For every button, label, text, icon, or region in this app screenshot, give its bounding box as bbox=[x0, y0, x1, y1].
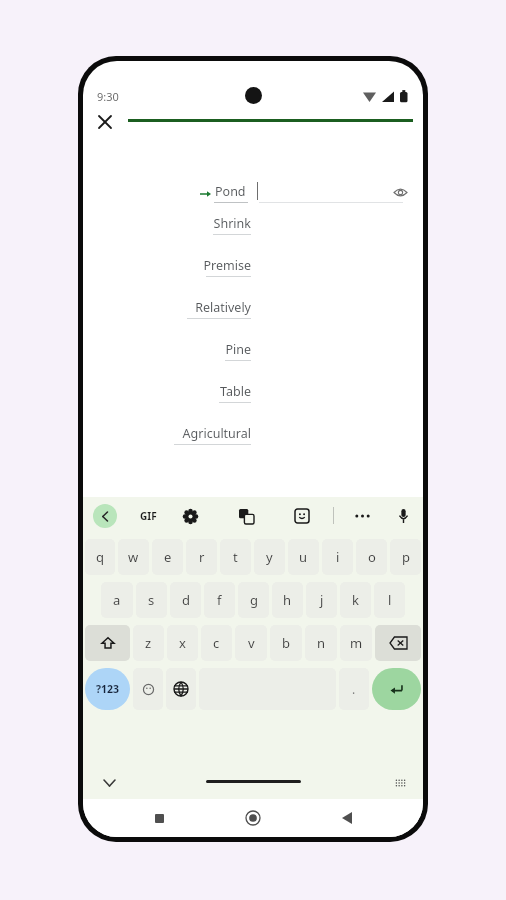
button[interactable]: w bbox=[118, 539, 149, 575]
staticText: . bbox=[352, 681, 356, 697]
button[interactable]: q bbox=[85, 539, 115, 575]
staticText: a bbox=[113, 591, 121, 609]
staticText: Relatively bbox=[123, 299, 251, 316]
staticText: h bbox=[283, 591, 292, 609]
button[interactable]: o bbox=[356, 539, 387, 575]
button[interactable]: Home bbox=[235, 800, 271, 836]
staticText: l bbox=[388, 591, 392, 609]
button[interactable]: Translate bbox=[231, 503, 261, 529]
staticText: n bbox=[317, 634, 326, 652]
button[interactable]: d bbox=[170, 582, 201, 618]
button[interactable]: a bbox=[101, 582, 133, 618]
button[interactable]: s bbox=[136, 582, 167, 618]
button[interactable]: Back bbox=[93, 504, 117, 528]
button[interactable]: l bbox=[374, 582, 405, 618]
button[interactable]: Show password bbox=[389, 181, 411, 203]
staticText: GIF bbox=[140, 509, 157, 523]
staticText: m bbox=[350, 634, 363, 652]
staticText: g bbox=[250, 591, 258, 609]
staticText: i bbox=[336, 548, 340, 566]
button[interactable]: Voice input bbox=[389, 503, 417, 529]
button[interactable]: Stickers bbox=[287, 503, 317, 529]
button[interactable]: n bbox=[305, 625, 337, 661]
button[interactable]: c bbox=[201, 625, 232, 661]
button[interactable]: Switch keyboard bbox=[389, 772, 411, 794]
staticText: s bbox=[148, 591, 155, 609]
button[interactable]: Agricultural bbox=[83, 417, 423, 459]
button[interactable]: k bbox=[340, 582, 371, 618]
staticText: ?123 bbox=[96, 682, 120, 696]
staticText: q bbox=[96, 548, 104, 566]
staticText: Premise bbox=[123, 257, 251, 274]
staticText: j bbox=[320, 591, 324, 609]
button[interactable]: g bbox=[238, 582, 269, 618]
button[interactable]: Relatively bbox=[83, 291, 423, 333]
button[interactable]: Backspace bbox=[375, 625, 421, 661]
button[interactable]: Emoji bbox=[133, 668, 163, 710]
staticText: t bbox=[233, 548, 238, 566]
button[interactable]: b bbox=[270, 625, 302, 661]
button[interactable]: r bbox=[186, 539, 217, 575]
button[interactable]: j bbox=[306, 582, 337, 618]
staticText: d bbox=[182, 591, 190, 609]
staticText: p bbox=[402, 548, 410, 566]
staticText: Shrink bbox=[123, 215, 251, 232]
staticText: f bbox=[217, 591, 222, 609]
button[interactable]: Settings bbox=[175, 503, 205, 529]
button[interactable]: x bbox=[167, 625, 198, 661]
button[interactable]: e bbox=[152, 539, 183, 575]
button[interactable]: Recents bbox=[141, 800, 177, 836]
button[interactable]: i bbox=[322, 539, 353, 575]
staticText: r bbox=[199, 548, 205, 566]
staticText: 9:30 bbox=[97, 89, 119, 104]
button[interactable]: Shrink bbox=[83, 207, 423, 249]
button[interactable]: h bbox=[272, 582, 303, 618]
staticText: Agricultural bbox=[123, 425, 251, 442]
staticText: v bbox=[248, 634, 255, 652]
button[interactable]: p bbox=[390, 539, 421, 575]
button[interactable]: Change keyboard language bbox=[166, 668, 196, 710]
button[interactable]: v bbox=[235, 625, 267, 661]
button[interactable]: m bbox=[340, 625, 372, 661]
staticText: Pine bbox=[123, 341, 251, 358]
button[interactable]: Table bbox=[83, 375, 423, 417]
button[interactable]: z bbox=[133, 625, 164, 661]
button[interactable]: GIF bbox=[131, 503, 165, 529]
button[interactable]: Hide keyboard bbox=[97, 771, 121, 795]
staticText: k bbox=[352, 591, 359, 609]
staticText: Pond bbox=[215, 183, 246, 200]
staticText: o bbox=[368, 548, 376, 566]
staticText: y bbox=[266, 548, 273, 566]
button[interactable]: Close bbox=[91, 108, 119, 136]
button[interactable]: . bbox=[339, 668, 369, 710]
button[interactable]: f bbox=[204, 582, 235, 618]
button[interactable]: u bbox=[288, 539, 319, 575]
button[interactable]: Shift bbox=[85, 625, 130, 661]
button[interactable]: Pine bbox=[83, 333, 423, 375]
staticText: x bbox=[179, 634, 186, 652]
button[interactable]: Premise bbox=[83, 249, 423, 291]
button[interactable]: y bbox=[254, 539, 285, 575]
staticText: b bbox=[282, 634, 290, 652]
button[interactable]: ?123 bbox=[85, 668, 130, 710]
button[interactable]: t bbox=[220, 539, 251, 575]
staticText: u bbox=[299, 548, 308, 566]
staticText: z bbox=[145, 634, 152, 652]
staticText: w bbox=[128, 548, 139, 566]
button[interactable]: Back bbox=[329, 800, 365, 836]
button[interactable]: More options bbox=[345, 503, 379, 529]
button[interactable]: Enter bbox=[372, 668, 421, 710]
staticText: c bbox=[213, 634, 220, 652]
staticText: Table bbox=[123, 383, 251, 400]
staticText: e bbox=[164, 548, 172, 566]
